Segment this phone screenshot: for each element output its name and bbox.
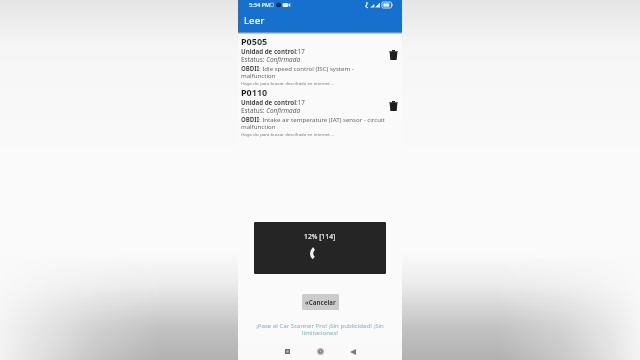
staticText: Haga clic para buscar descifrado en inte… <box>241 131 335 137</box>
staticText: 12% [114] <box>304 232 336 241</box>
staticText: «Cancelar <box>305 298 336 306</box>
staticText: P0505 <box>241 35 268 47</box>
button[interactable]: Home <box>305 343 335 360</box>
staticText: Leer <box>244 14 265 27</box>
staticText: Unidad de control:17 <box>241 98 305 106</box>
button[interactable]: Leer <box>238 11 402 32</box>
button[interactable]: Back <box>338 343 368 360</box>
staticText: OBDII: Idle speed control (ISC) system -… <box>241 64 385 80</box>
button[interactable]: Delete <box>385 86 402 111</box>
button[interactable]: Delete <box>385 35 402 60</box>
staticText: P0110 <box>241 86 268 98</box>
button[interactable]: P0505 <box>238 34 402 86</box>
staticText: Estatus: Confirmada <box>241 55 301 64</box>
button[interactable]: ¡Pase al Car Scanner Pro! ¡Sin publicida… <box>238 321 402 337</box>
staticText: 5:34 PM <box>249 1 271 9</box>
button[interactable]: Recent apps <box>272 343 302 360</box>
staticText: ¡Pase al Car Scanner Pro! ¡Sin publicida… <box>252 321 388 337</box>
staticText: Estatus: Confirmada <box>241 106 301 115</box>
button[interactable]: «Cancelar <box>302 294 339 310</box>
staticText: Unidad de control:17 <box>241 47 305 55</box>
button[interactable]: P0110 <box>238 86 402 137</box>
staticText: Haga clic para buscar descifrado en inte… <box>241 80 335 86</box>
staticText: OBDII: Intake air temperature (IAT) sens… <box>241 115 385 131</box>
